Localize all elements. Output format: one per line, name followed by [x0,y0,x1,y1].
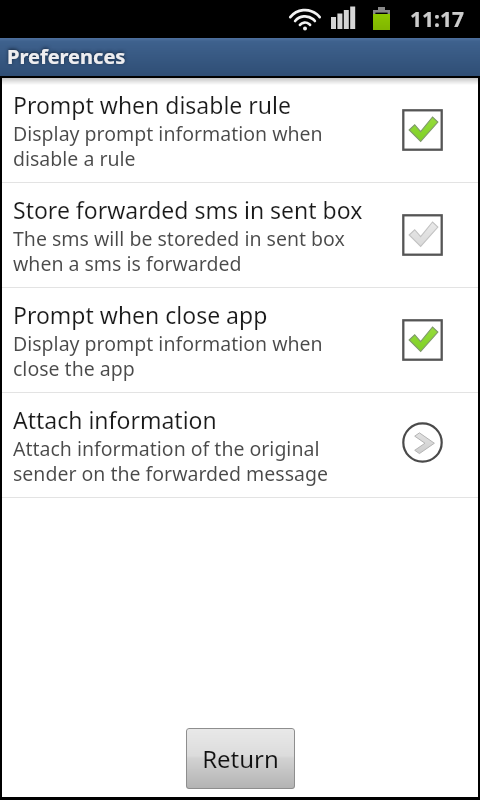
button[interactable]: Prompt when close app [2,288,478,392]
staticText: Store forwarded sms in sent box [13,194,363,225]
staticText: Attach information [13,404,217,435]
staticText: Return [202,742,279,775]
staticText: Attach information of the original sende… [13,435,351,486]
staticText: Prompt when close app [13,299,268,330]
staticText: Display prompt information when close th… [13,330,351,381]
staticText: Preferences [7,43,126,70]
button[interactable]: Prompt when close app checkbox [402,318,443,362]
button[interactable]: Store forwarded sms in sent box [2,183,478,287]
staticText: The sms will be storeded in sent box whe… [13,225,351,276]
button[interactable]: Store forwarded sms in sent box checkbox [402,213,443,257]
staticText: Display prompt information when disable … [13,120,351,171]
staticText: 11:17 [410,5,464,34]
staticText: Prompt when disable rule [13,89,291,120]
button[interactable]: Attach information [2,393,478,497]
button[interactable]: Return [186,728,295,789]
button[interactable]: Prompt when disable rule checkbox [402,108,443,152]
button[interactable]: Attach information [402,420,443,464]
button[interactable]: Prompt when disable rule [2,78,478,182]
